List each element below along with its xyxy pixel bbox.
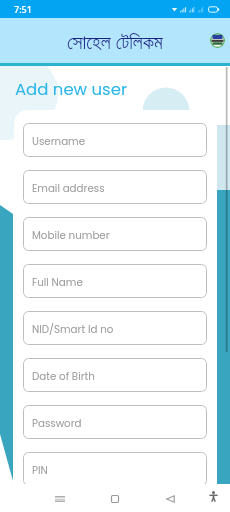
staticText: Username	[32, 134, 86, 148]
button[interactable]: Full Name	[23, 264, 207, 298]
staticText: Password	[32, 416, 82, 430]
button[interactable]: Mobile number	[23, 217, 207, 251]
staticText: Mobile number	[32, 228, 110, 242]
staticText: Full Name	[32, 275, 83, 289]
button[interactable]: PIN	[23, 452, 207, 486]
staticText: PIN	[32, 463, 48, 477]
staticText: Add new user	[15, 78, 128, 101]
button[interactable]: Email address	[23, 170, 207, 204]
staticText: 7:51	[14, 3, 32, 15]
staticText: Email address	[32, 181, 105, 195]
button[interactable]: Back	[158, 487, 182, 511]
button[interactable]: Home	[103, 487, 127, 511]
button[interactable]: Accessibility	[205, 488, 221, 504]
button[interactable]: Date of Birth	[23, 358, 207, 392]
button[interactable]: NID/Smart Id no	[23, 311, 207, 345]
button[interactable]: Profile	[210, 33, 225, 48]
button[interactable]: Recent apps	[48, 487, 72, 511]
button[interactable]: Username	[23, 123, 207, 157]
staticText: Date of Birth	[32, 369, 95, 383]
staticText: NID/Smart Id no	[32, 322, 114, 336]
staticText: সোহেল টেলিকম	[67, 28, 163, 55]
button[interactable]: Password	[23, 405, 207, 439]
